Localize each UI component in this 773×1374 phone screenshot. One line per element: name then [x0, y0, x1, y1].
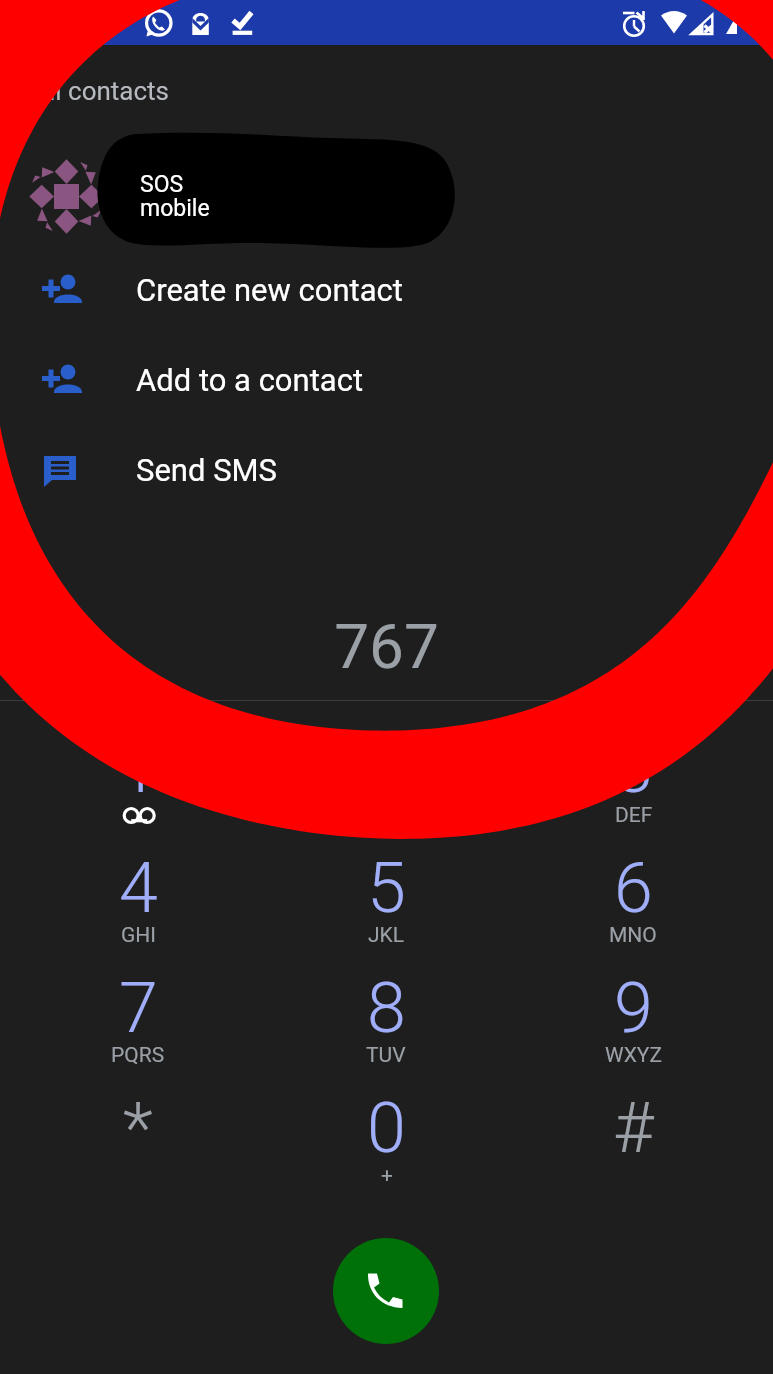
staticText: 4: [119, 847, 158, 929]
staticText: DEF: [615, 803, 653, 828]
staticText: 0: [367, 1087, 406, 1169]
button[interactable]: 5: [306, 833, 466, 953]
staticText: +: [381, 1163, 393, 1188]
button[interactable]: [0, 146, 773, 238]
button[interactable]: #: [553, 1073, 713, 1193]
button[interactable]: 7: [58, 953, 218, 1073]
staticText: Add to a contact: [136, 362, 364, 398]
staticText: PQRS: [111, 1043, 165, 1068]
button[interactable]: 1: [58, 713, 218, 833]
button[interactable]: 0: [306, 1073, 466, 1193]
staticText: *: [123, 1087, 153, 1169]
button[interactable]: 4: [58, 833, 218, 953]
staticText: 3: [614, 727, 653, 809]
button[interactable]: Send SMS: [0, 425, 773, 515]
staticText: Create new contact: [136, 272, 403, 308]
button[interactable]: Add to a contact: [0, 335, 773, 425]
staticText: #: [613, 1087, 654, 1169]
button[interactable]: 3: [553, 713, 713, 833]
staticText: SOS: [140, 171, 184, 198]
button[interactable]: 9: [553, 953, 713, 1073]
button[interactable]: Create new contact: [0, 245, 773, 335]
button[interactable]: 8: [306, 953, 466, 1073]
staticText: 7: [119, 967, 158, 1049]
staticText: 767: [0, 610, 773, 683]
staticText: 5: [367, 847, 406, 929]
staticText: WXYZ: [605, 1043, 662, 1068]
staticText: JKL: [368, 923, 405, 948]
staticText: 9: [614, 967, 653, 1049]
staticText: mobile: [140, 195, 210, 222]
button[interactable]: Call: [333, 1238, 439, 1344]
staticText: All contacts: [32, 76, 170, 106]
staticText: TUV: [366, 1043, 406, 1068]
button[interactable]: 6: [553, 833, 713, 953]
staticText: 6: [614, 847, 653, 929]
staticText: 8: [367, 967, 406, 1049]
staticText: 2: [367, 727, 406, 809]
staticText: MNO: [609, 923, 657, 948]
staticText: GHI: [121, 923, 156, 948]
staticText: Send SMS: [136, 452, 278, 488]
staticText: 1: [119, 727, 158, 809]
button[interactable]: 2: [306, 713, 466, 833]
button[interactable]: *: [58, 1073, 218, 1193]
